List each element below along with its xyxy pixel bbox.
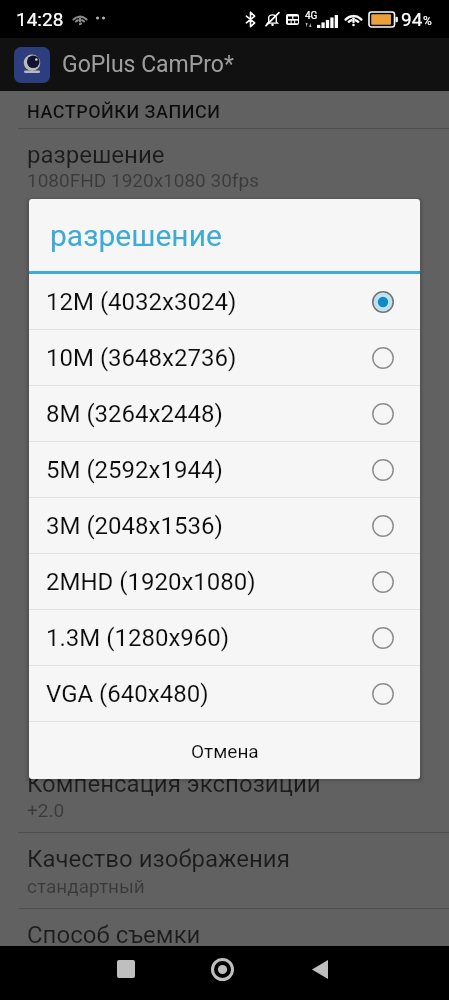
staticText: Компенсация экспозиции — [27, 770, 321, 798]
staticText: 14:28 — [16, 8, 64, 30]
staticText: 10M (3648x2736) — [46, 344, 237, 372]
button[interactable]: Home — [199, 946, 245, 992]
button[interactable]: Способ съемки — [0, 921, 449, 949]
staticText: GoPlus CamPro* — [62, 51, 234, 78]
button[interactable]: 5M (2592x1944) — [29, 442, 420, 497]
staticText: 5M (2592x1944) — [46, 456, 223, 484]
staticText: +2.0 — [27, 799, 65, 821]
staticText: НАСТРОЙКИ ЗАПИСИ — [27, 101, 221, 122]
button[interactable]: Качество изображения — [0, 845, 449, 897]
staticText: 1.3M (1280x960) — [46, 624, 230, 652]
staticText: разрешение — [27, 141, 165, 169]
staticText: 8M (3264x2448) — [46, 400, 223, 428]
staticText: разрешение — [50, 218, 222, 253]
button[interactable]: Отмена — [29, 722, 420, 779]
staticText: Качество изображения — [27, 845, 290, 873]
button[interactable]: 8M (3264x2448) — [29, 386, 420, 441]
staticText: 4G — [305, 10, 318, 22]
button[interactable]: Recent apps — [103, 946, 149, 992]
button[interactable]: 12M (4032x3024) — [29, 274, 420, 329]
staticText: стандартный — [27, 875, 145, 897]
button[interactable]: 3M (2048x1536) — [29, 498, 420, 553]
staticText: Отмена — [191, 740, 259, 762]
button[interactable]: 10M (3648x2736) — [29, 330, 420, 385]
button[interactable]: Компенсация экспозиции — [0, 770, 449, 821]
staticText: 1080FHD 1920x1080 30fps — [27, 169, 259, 191]
button[interactable]: GoPlus CamPro* — [0, 38, 449, 91]
staticText: 2MHD (1920x1080) — [46, 568, 256, 596]
button[interactable]: разрешение — [0, 129, 449, 199]
staticText: VGA (640x480) — [46, 680, 209, 708]
button[interactable]: VGA (640x480) — [29, 666, 420, 721]
staticText: 12M (4032x3024) — [46, 288, 237, 316]
staticText: % — [423, 14, 432, 28]
button[interactable]: Back — [297, 946, 343, 992]
staticText: Способ съемки — [27, 921, 201, 949]
staticText: 94 — [401, 8, 423, 30]
button[interactable]: 2MHD (1920x1080) — [29, 554, 420, 609]
button[interactable]: 1.3M (1280x960) — [29, 610, 420, 665]
staticText: 3M (2048x1536) — [46, 512, 223, 540]
